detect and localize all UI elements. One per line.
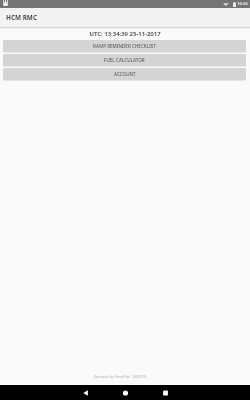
button[interactable]: Home [113,385,138,400]
staticText: HCM RMC [6,13,38,22]
button[interactable]: FUEL CALCULATOR [3,54,246,66]
button[interactable]: Back [73,385,98,400]
staticText: FUEL CALCULATOR [104,57,145,63]
button[interactable]: RAMP REMINDER CHECKLIST [3,40,246,52]
staticText: Developed by HeavyPilot - 24033735 [0,375,245,379]
button[interactable]: ACCOUNT [3,68,246,80]
staticText: ACCOUNT [114,71,136,77]
staticText: RAMP REMINDER CHECKLIST [93,43,156,49]
staticText: 16:34 [237,1,248,7]
staticText: UTC: 13:34:39 25-11-2017 [0,30,250,38]
button[interactable]: Recents [153,385,178,400]
